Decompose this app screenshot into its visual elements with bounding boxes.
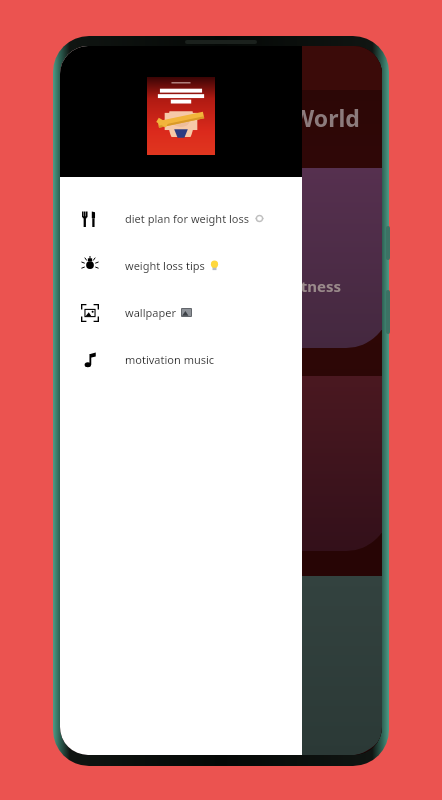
button[interactable]: Wallpaper: [60, 289, 302, 336]
staticText: weight loss tips: [125, 258, 205, 273]
other: Wallpaper: [81, 304, 99, 322]
other: Weight loss tips: [81, 257, 99, 275]
staticText: Fitness: [288, 276, 341, 296]
button[interactable]: Weight loss tips: [60, 242, 302, 289]
staticText: diet plan for weight loss: [125, 211, 250, 226]
staticText: World: [292, 102, 360, 133]
button[interactable]: Motivation music: [60, 336, 302, 383]
staticText: wallpaper: [125, 305, 176, 320]
button[interactable]: Diet plan: [60, 195, 302, 242]
other: Motivation music: [81, 351, 99, 369]
other: Diet plan: [81, 210, 99, 228]
staticText: motivation music: [125, 352, 215, 367]
